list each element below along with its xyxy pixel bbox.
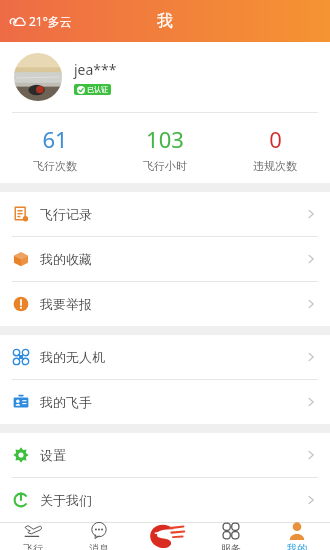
- button[interactable]: 61: [0, 124, 110, 173]
- staticText: 飞行次数: [33, 159, 77, 173]
- staticText: 我的: [287, 542, 307, 550]
- button[interactable]: 我的收藏: [0, 237, 330, 281]
- staticText: 103: [146, 124, 184, 154]
- staticText: 已认证: [87, 85, 108, 94]
- button[interactable]: Home: [143, 522, 187, 550]
- staticText: 违规次数: [253, 159, 297, 173]
- staticText: 我的收藏: [40, 251, 92, 267]
- staticText: 飞行记录: [40, 206, 92, 222]
- staticText: 61: [42, 124, 68, 154]
- staticText: 21°多云: [29, 13, 72, 29]
- staticText: 我: [157, 11, 173, 31]
- button[interactable]: 飞行: [0, 522, 66, 550]
- button[interactable]: 我的飞手: [0, 380, 330, 424]
- button[interactable]: 我的: [264, 522, 330, 550]
- staticText: 服务: [221, 542, 241, 550]
- staticText: 消息: [89, 542, 109, 550]
- staticText: 我的无人机: [40, 349, 105, 365]
- staticText: 0: [269, 124, 282, 154]
- staticText: 飞行: [23, 542, 43, 550]
- button[interactable]: 消息: [66, 522, 132, 550]
- staticText: 我的飞手: [40, 394, 92, 410]
- staticText: 关于我们: [40, 492, 92, 508]
- button[interactable]: 103: [110, 124, 220, 173]
- staticText: jea***: [74, 60, 117, 79]
- button[interactable]: 服务: [198, 522, 264, 550]
- button[interactable]: 0: [220, 124, 330, 173]
- staticText: 飞行小时: [143, 159, 187, 173]
- staticText: 我要举报: [40, 296, 92, 312]
- button[interactable]: 我要举报: [0, 282, 330, 326]
- staticText: 设置: [40, 447, 66, 463]
- button[interactable]: 飞行记录: [0, 192, 330, 236]
- button[interactable]: 我的无人机: [0, 335, 330, 379]
- button[interactable]: 关于我们: [0, 478, 330, 522]
- button[interactable]: 设置: [0, 433, 330, 477]
